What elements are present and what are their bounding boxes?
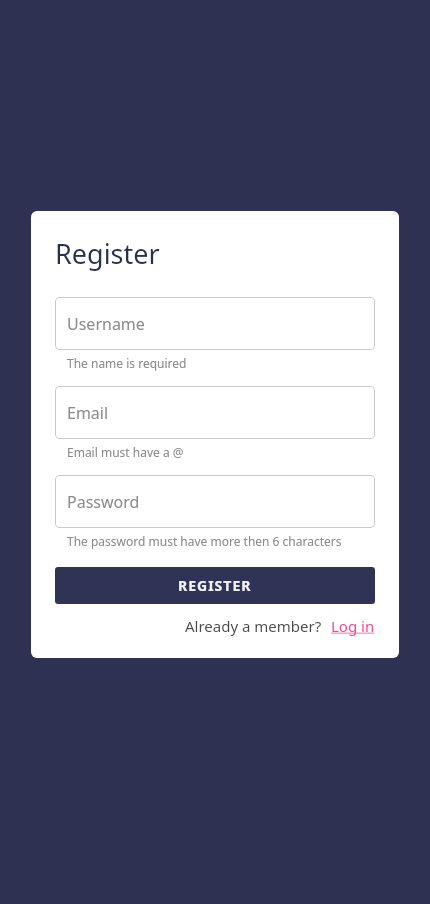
button[interactable]: REGISTER	[55, 567, 375, 604]
button[interactable]: Log in	[331, 616, 375, 636]
staticText: Username	[67, 313, 145, 335]
staticText: Log in	[331, 616, 375, 636]
staticText: Email must have a @	[67, 444, 184, 460]
button[interactable]: Username	[55, 297, 375, 350]
staticText: Email	[67, 402, 109, 424]
button[interactable]: Email	[55, 386, 375, 439]
staticText: The password must have more then 6 chara…	[67, 533, 342, 549]
staticText: The name is required	[67, 355, 187, 371]
staticText: REGISTER	[178, 576, 252, 595]
staticText: Already a member?	[185, 616, 322, 636]
button[interactable]: Password	[55, 475, 375, 528]
staticText: Register	[55, 235, 160, 272]
staticText: Password	[67, 491, 140, 513]
